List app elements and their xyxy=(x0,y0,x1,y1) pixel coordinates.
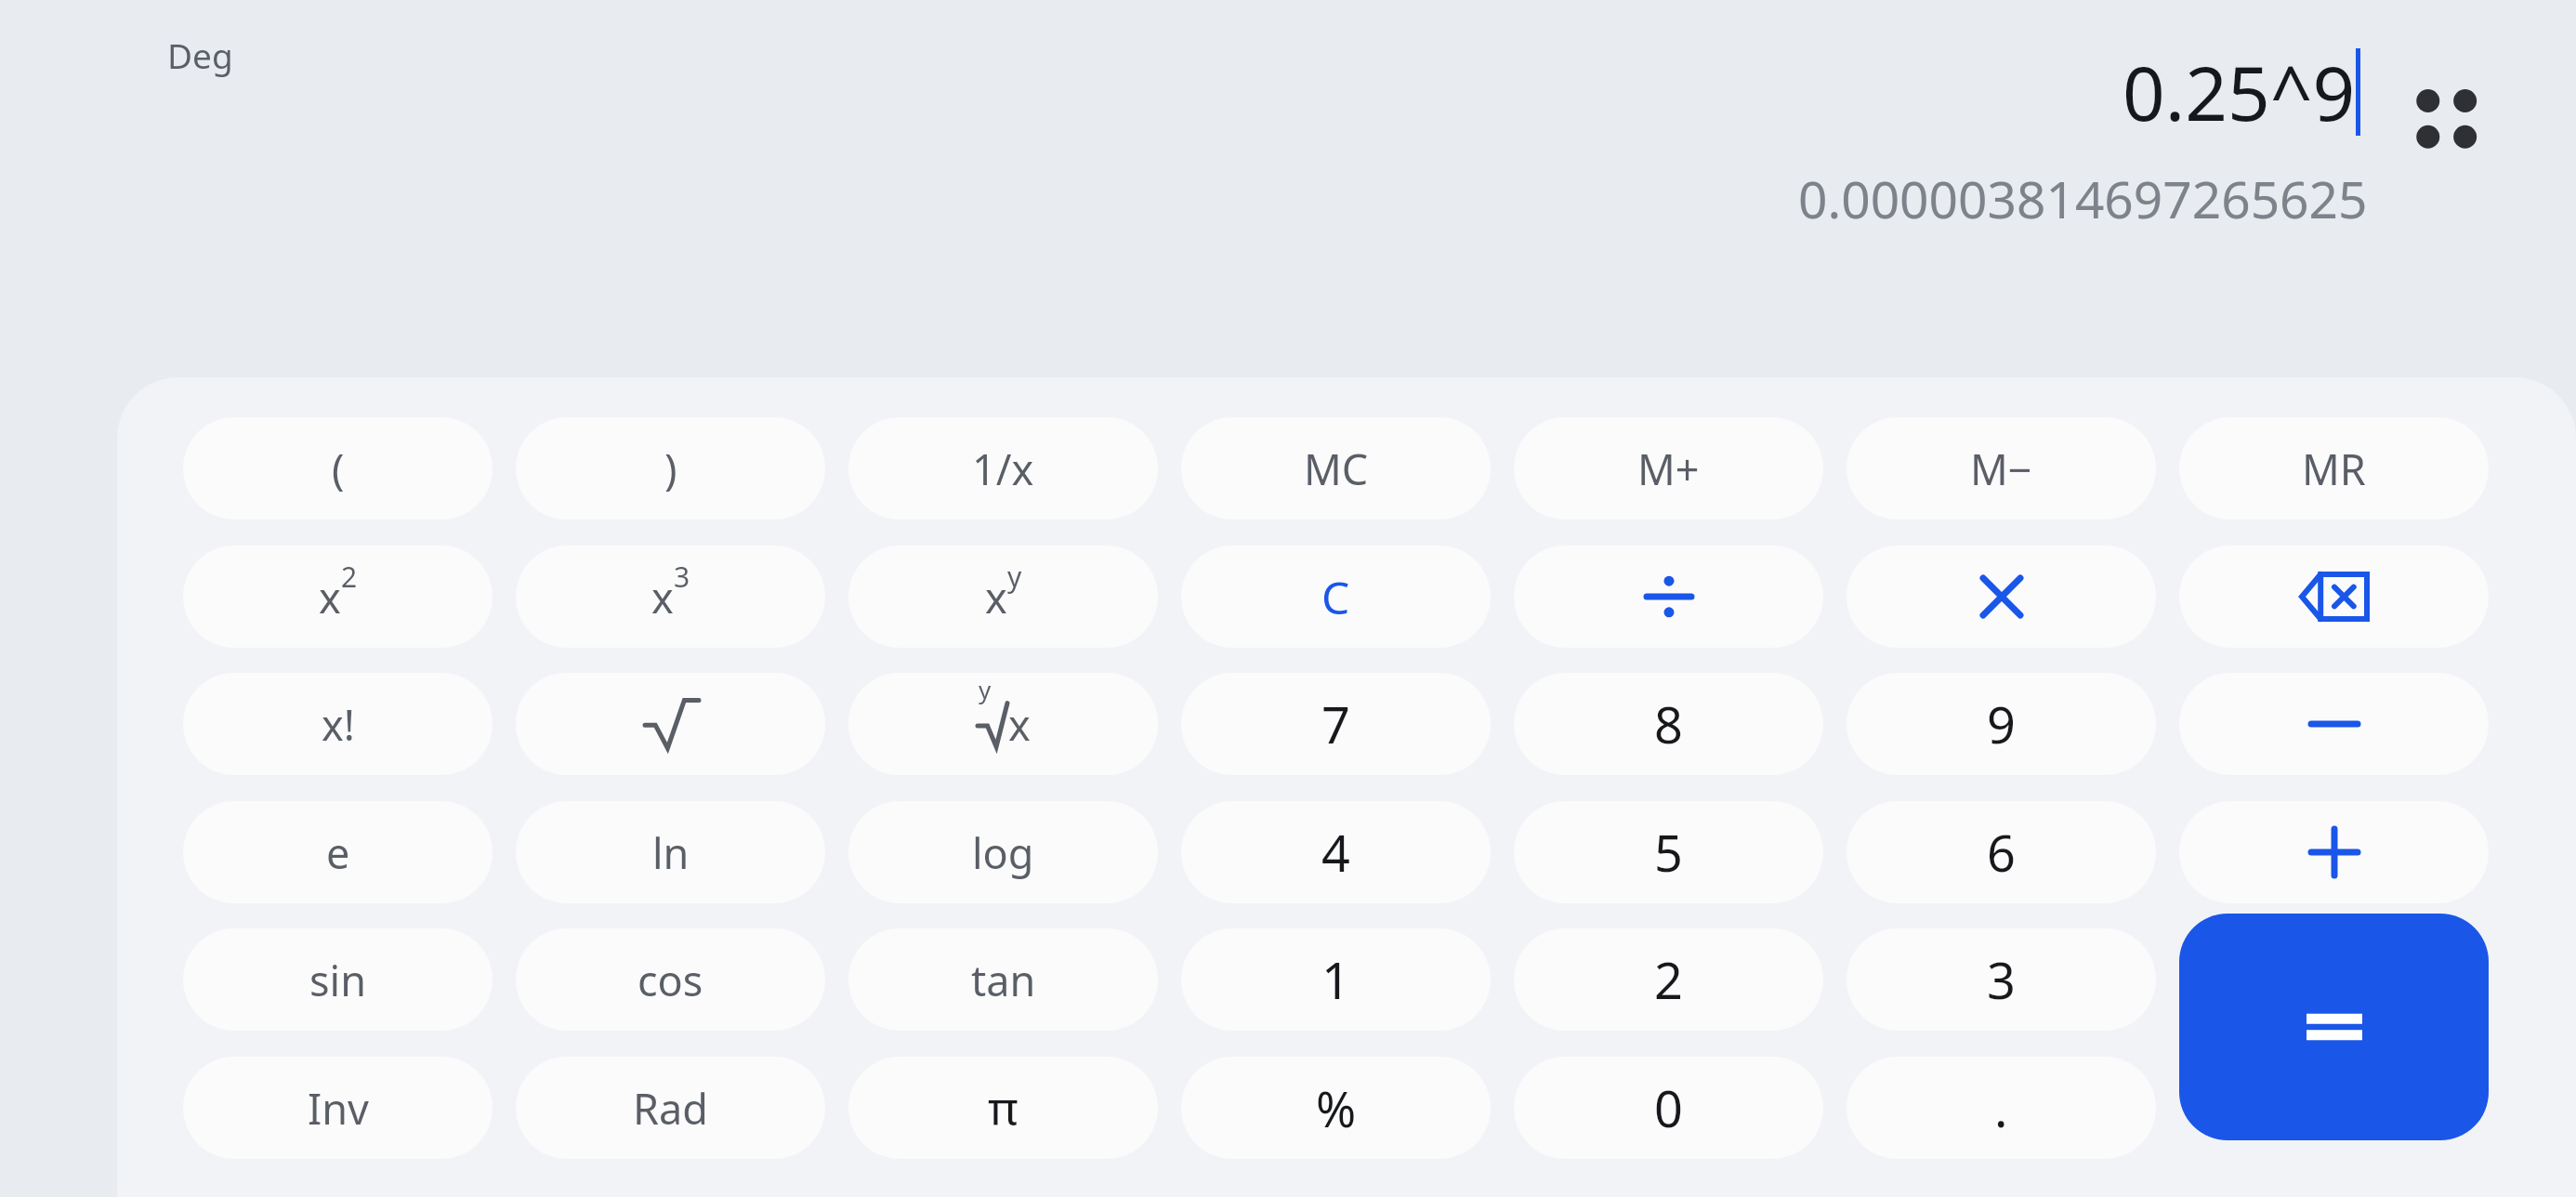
button[interactable]: Equals xyxy=(2179,914,2489,1140)
staticText: 8 xyxy=(1654,690,1683,758)
staticText: x xyxy=(319,569,341,625)
button[interactable]: 2 xyxy=(1514,928,1823,1031)
staticText: C xyxy=(1321,567,1350,627)
staticText: 2 xyxy=(341,558,358,596)
button[interactable]: x xyxy=(848,546,1158,648)
staticText: Deg xyxy=(167,32,233,78)
button[interactable]: sin xyxy=(183,928,493,1031)
staticText: y xyxy=(979,673,992,705)
button[interactable]: Square root xyxy=(516,673,825,775)
staticText: M+ xyxy=(1637,441,1700,497)
staticText: x xyxy=(985,569,1007,625)
button[interactable]: 3 xyxy=(1847,928,2156,1031)
staticText: ) xyxy=(664,441,677,497)
staticText: x xyxy=(1008,696,1031,753)
staticText: Rad xyxy=(633,1080,708,1137)
button[interactable]: 8 xyxy=(1514,673,1823,775)
button[interactable]: 9 xyxy=(1847,673,2156,775)
button[interactable]: MR xyxy=(2179,417,2489,520)
staticText: Inv xyxy=(308,1080,369,1137)
staticText: x! xyxy=(322,696,355,753)
button[interactable]: 1 xyxy=(1181,928,1491,1031)
button[interactable]: x xyxy=(183,546,493,648)
button[interactable]: 4 xyxy=(1181,801,1491,903)
button[interactable]: . xyxy=(1847,1057,2156,1159)
button[interactable]: Subtract xyxy=(2179,673,2489,775)
staticText: cos xyxy=(637,952,703,1008)
staticText: 9 xyxy=(1987,690,2016,758)
button[interactable]: π xyxy=(848,1057,1158,1159)
button[interactable]: More options xyxy=(2392,67,2498,173)
staticText: 3 xyxy=(1987,945,2016,1014)
button[interactable]: Backspace xyxy=(2179,546,2489,648)
button[interactable]: % xyxy=(1181,1057,1491,1159)
button[interactable]: ( xyxy=(183,417,493,520)
button[interactable]: 5 xyxy=(1514,801,1823,903)
staticText: ln xyxy=(652,824,690,881)
button[interactable]: tan xyxy=(848,928,1158,1031)
staticText: 2 xyxy=(1654,945,1683,1014)
button[interactable]: M− xyxy=(1847,417,2156,520)
button[interactable]: Add xyxy=(2179,801,2489,903)
staticText: sin xyxy=(309,952,366,1008)
staticText: 7 xyxy=(1321,690,1350,758)
button[interactable]: ln xyxy=(516,801,825,903)
button[interactable]: 7 xyxy=(1181,673,1491,775)
staticText: y xyxy=(1007,558,1022,596)
staticText: 1/x xyxy=(972,441,1034,497)
staticText: . xyxy=(1994,1073,2008,1142)
staticText: M− xyxy=(1970,441,2032,497)
button[interactable]: x xyxy=(516,546,825,648)
staticText: % xyxy=(1316,1075,1357,1141)
button[interactable]: Nth root xyxy=(848,673,1158,775)
staticText: 4 xyxy=(1321,818,1350,887)
staticText: MC xyxy=(1304,441,1369,497)
staticText: e xyxy=(326,824,350,881)
staticText: x xyxy=(651,569,674,625)
staticText: 1 xyxy=(1321,945,1350,1014)
staticText: 0.000003814697265625 xyxy=(1798,164,2368,233)
button[interactable]: Multiply xyxy=(1847,546,2156,648)
button[interactable]: log xyxy=(848,801,1158,903)
button[interactable]: MC xyxy=(1181,417,1491,520)
button[interactable]: 0 xyxy=(1514,1057,1823,1159)
staticText: ( xyxy=(332,441,345,497)
button[interactable] xyxy=(848,673,1158,775)
button[interactable]: M+ xyxy=(1514,417,1823,520)
button[interactable]: Rad xyxy=(516,1057,825,1159)
button[interactable]: Inv xyxy=(183,1057,493,1159)
button[interactable]: 6 xyxy=(1847,801,2156,903)
button[interactable]: C xyxy=(1181,546,1491,648)
staticText: MR xyxy=(2302,441,2366,497)
staticText: 5 xyxy=(1654,818,1683,887)
button[interactable]: x! xyxy=(183,673,493,775)
staticText: tan xyxy=(971,952,1036,1008)
button[interactable]: 1/x xyxy=(848,417,1158,520)
button[interactable] xyxy=(516,673,825,775)
staticText: 0.25^9 xyxy=(2123,41,2356,142)
button[interactable]: e xyxy=(183,801,493,903)
button[interactable]: Divide xyxy=(1514,546,1823,648)
button[interactable]: cos xyxy=(516,928,825,1031)
staticText: π xyxy=(988,1076,1019,1139)
staticText: 3 xyxy=(674,558,690,596)
staticText: 6 xyxy=(1987,818,2016,887)
staticText: log xyxy=(972,824,1034,881)
staticText: 0 xyxy=(1654,1073,1683,1142)
button[interactable]: ) xyxy=(516,417,825,520)
